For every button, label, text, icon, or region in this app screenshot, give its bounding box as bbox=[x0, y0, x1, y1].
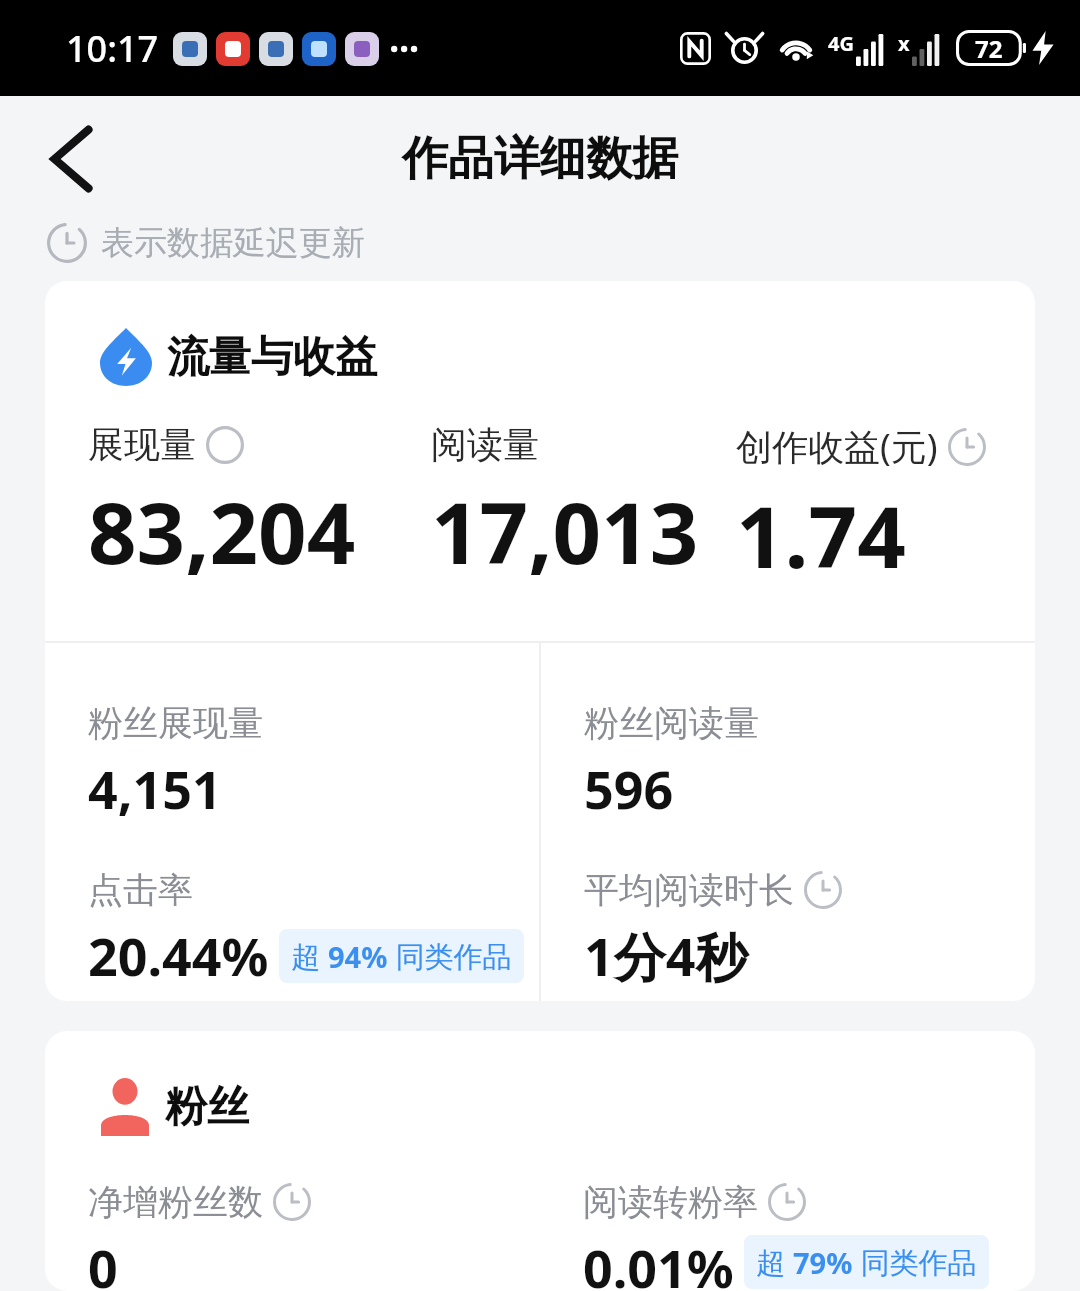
staticText: 17,013 bbox=[431, 473, 699, 589]
staticText: 阅读量 bbox=[431, 422, 539, 467]
staticText: 同类作品 bbox=[853, 1242, 977, 1282]
staticText: 20.44% bbox=[88, 920, 269, 991]
staticText: 粉丝 bbox=[165, 1081, 249, 1134]
staticText: 72 bbox=[975, 32, 1003, 65]
staticText: x bbox=[898, 30, 910, 57]
staticText: 4,151 bbox=[88, 753, 222, 824]
staticText: 4G bbox=[828, 30, 854, 57]
button[interactable]: 粉丝 bbox=[45, 1031, 1035, 1291]
staticText: 平均阅读时长 bbox=[584, 868, 794, 912]
staticText: 超 bbox=[291, 936, 328, 976]
staticText: 超 bbox=[756, 1242, 793, 1282]
staticText: 表示数据延迟更新 bbox=[101, 222, 365, 264]
staticText: 1.74 bbox=[736, 477, 906, 593]
staticText: 作品详细数据 bbox=[402, 130, 678, 188]
button[interactable]: 流量与收益 bbox=[45, 281, 1035, 1001]
staticText: 596 bbox=[584, 753, 674, 824]
staticText: 净增粉丝数 bbox=[88, 1180, 263, 1224]
staticText: 83,204 bbox=[88, 473, 356, 589]
staticText: 粉丝展现量 bbox=[88, 701, 263, 745]
staticText: 79% bbox=[793, 1243, 853, 1282]
staticText: 0.01% bbox=[583, 1232, 734, 1291]
staticText: 粉丝阅读量 bbox=[584, 701, 759, 745]
staticText: 0 bbox=[88, 1232, 118, 1291]
staticText: 阅读转粉率 bbox=[583, 1180, 758, 1224]
staticText: 创作收益(元) bbox=[736, 422, 938, 471]
staticText: 点击率 bbox=[88, 868, 193, 912]
staticText: 同类作品 bbox=[388, 936, 512, 976]
button[interactable]: Back bbox=[34, 121, 110, 197]
staticText: 流量与收益 bbox=[167, 331, 377, 384]
staticText: 展现量 bbox=[88, 422, 196, 467]
staticText: 1分4秒 bbox=[584, 920, 748, 991]
staticText: 94% bbox=[328, 937, 388, 976]
staticText: 10:17 bbox=[66, 24, 159, 73]
